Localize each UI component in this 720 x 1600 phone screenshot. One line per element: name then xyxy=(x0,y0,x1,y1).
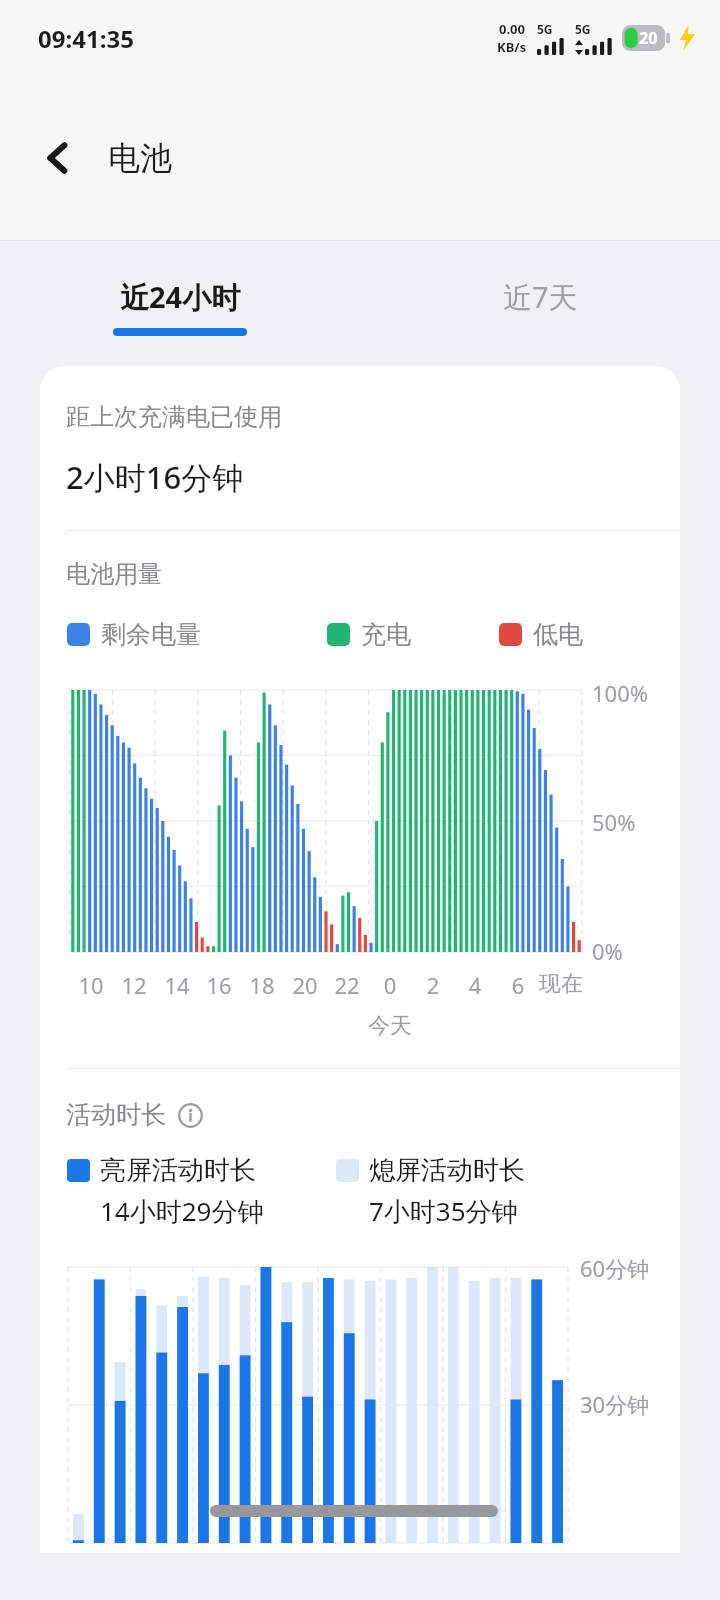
staticText: 22 xyxy=(323,970,371,1000)
staticText: 2 xyxy=(409,970,457,1000)
staticText: 14 xyxy=(153,970,201,1000)
staticText: 亮屏活动时长 xyxy=(100,1154,256,1187)
staticText: 0.00 xyxy=(499,20,525,38)
staticText: 低电 xyxy=(533,619,583,650)
staticText: 16 xyxy=(195,970,243,1000)
staticText: 18 xyxy=(238,970,286,1000)
staticText: 熄屏活动时长 xyxy=(369,1154,525,1187)
staticText: 5G xyxy=(537,21,553,37)
staticText: 09:41:35 xyxy=(38,22,134,55)
staticText: 30分钟 xyxy=(580,1389,650,1419)
staticText: 电池 xyxy=(108,138,172,178)
button[interactable]: Back xyxy=(28,128,88,188)
staticText: 10 xyxy=(67,970,115,1000)
staticText: 今天 xyxy=(360,1012,420,1040)
staticText: 距上次充满电已使用 xyxy=(66,402,282,432)
staticText: 4 xyxy=(451,970,499,1000)
staticText: 100% xyxy=(592,678,649,708)
staticText: 50% xyxy=(592,807,636,837)
staticText: 14小时29分钟 xyxy=(100,1193,264,1229)
staticText: 20 xyxy=(639,27,658,49)
staticText: 现在 xyxy=(537,970,585,998)
staticText: 12 xyxy=(110,970,158,1000)
staticText: 近7天 xyxy=(503,277,578,317)
staticText: 2小时16分钟 xyxy=(66,456,244,498)
staticText: 20 xyxy=(281,970,329,1000)
staticText: 0% xyxy=(592,936,623,966)
staticText: KB/s xyxy=(497,38,527,56)
staticText: 活动时长 xyxy=(66,1099,166,1130)
staticText: 6 xyxy=(494,970,542,1000)
staticText: 7小时35分钟 xyxy=(369,1193,518,1229)
staticText: 5G xyxy=(575,21,591,37)
staticText: 充电 xyxy=(361,619,411,650)
staticText: 剩余电量 xyxy=(101,619,201,650)
staticText: 电池用量 xyxy=(66,559,162,589)
staticText: 0 xyxy=(366,970,414,1000)
staticText: 近24小时 xyxy=(120,277,241,317)
staticText: 60分钟 xyxy=(580,1253,650,1283)
button[interactable]: 近24小时 xyxy=(83,269,277,344)
button[interactable]: 近7天 xyxy=(443,269,637,344)
button[interactable]: 活动时长说明 xyxy=(176,1101,204,1129)
